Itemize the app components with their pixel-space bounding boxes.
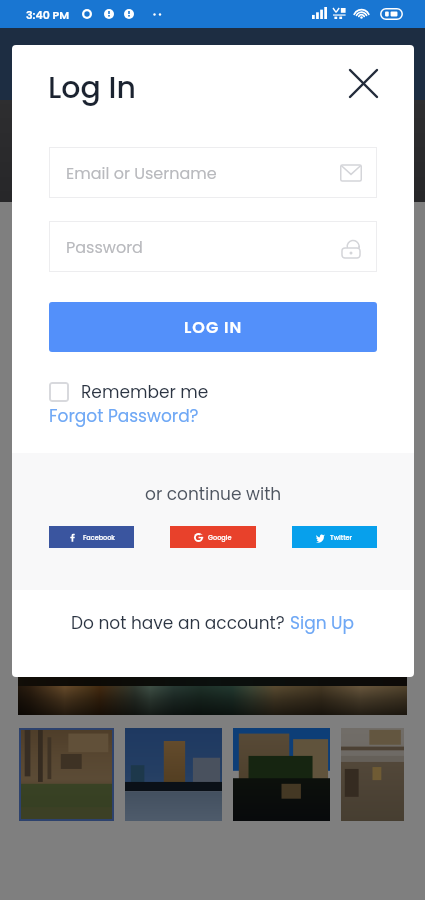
button[interactable]: LOG IN: [49, 302, 377, 352]
button[interactable]: Sign Up: [290, 611, 355, 635]
staticText: Twitter: [330, 533, 353, 542]
button[interactable]: Facebook: [49, 526, 134, 548]
staticText: Sign Up: [290, 611, 355, 635]
button[interactable]: Google: [170, 526, 256, 548]
staticText: Email or Username: [66, 162, 217, 184]
staticText: Remember me: [81, 380, 209, 404]
button[interactable]: Forgot Password?: [49, 404, 199, 428]
button[interactable]: Close: [341, 61, 385, 105]
staticText: Password: [66, 236, 143, 258]
staticText: Log In: [48, 67, 136, 109]
button[interactable]: Email or Username: [49, 147, 377, 198]
staticText: 3:40 PM: [26, 7, 70, 22]
staticText: Google: [208, 533, 232, 542]
staticText: Forgot Password?: [49, 404, 199, 428]
button[interactable]: Twitter: [292, 526, 377, 548]
staticText: Do not have an account?: [71, 611, 290, 635]
staticText: LOG IN: [184, 316, 243, 338]
staticText: or continue with: [145, 482, 282, 506]
button[interactable]: Password: [49, 221, 377, 272]
staticText: Facebook: [83, 533, 115, 542]
button[interactable]: Remember me: [49, 380, 209, 404]
